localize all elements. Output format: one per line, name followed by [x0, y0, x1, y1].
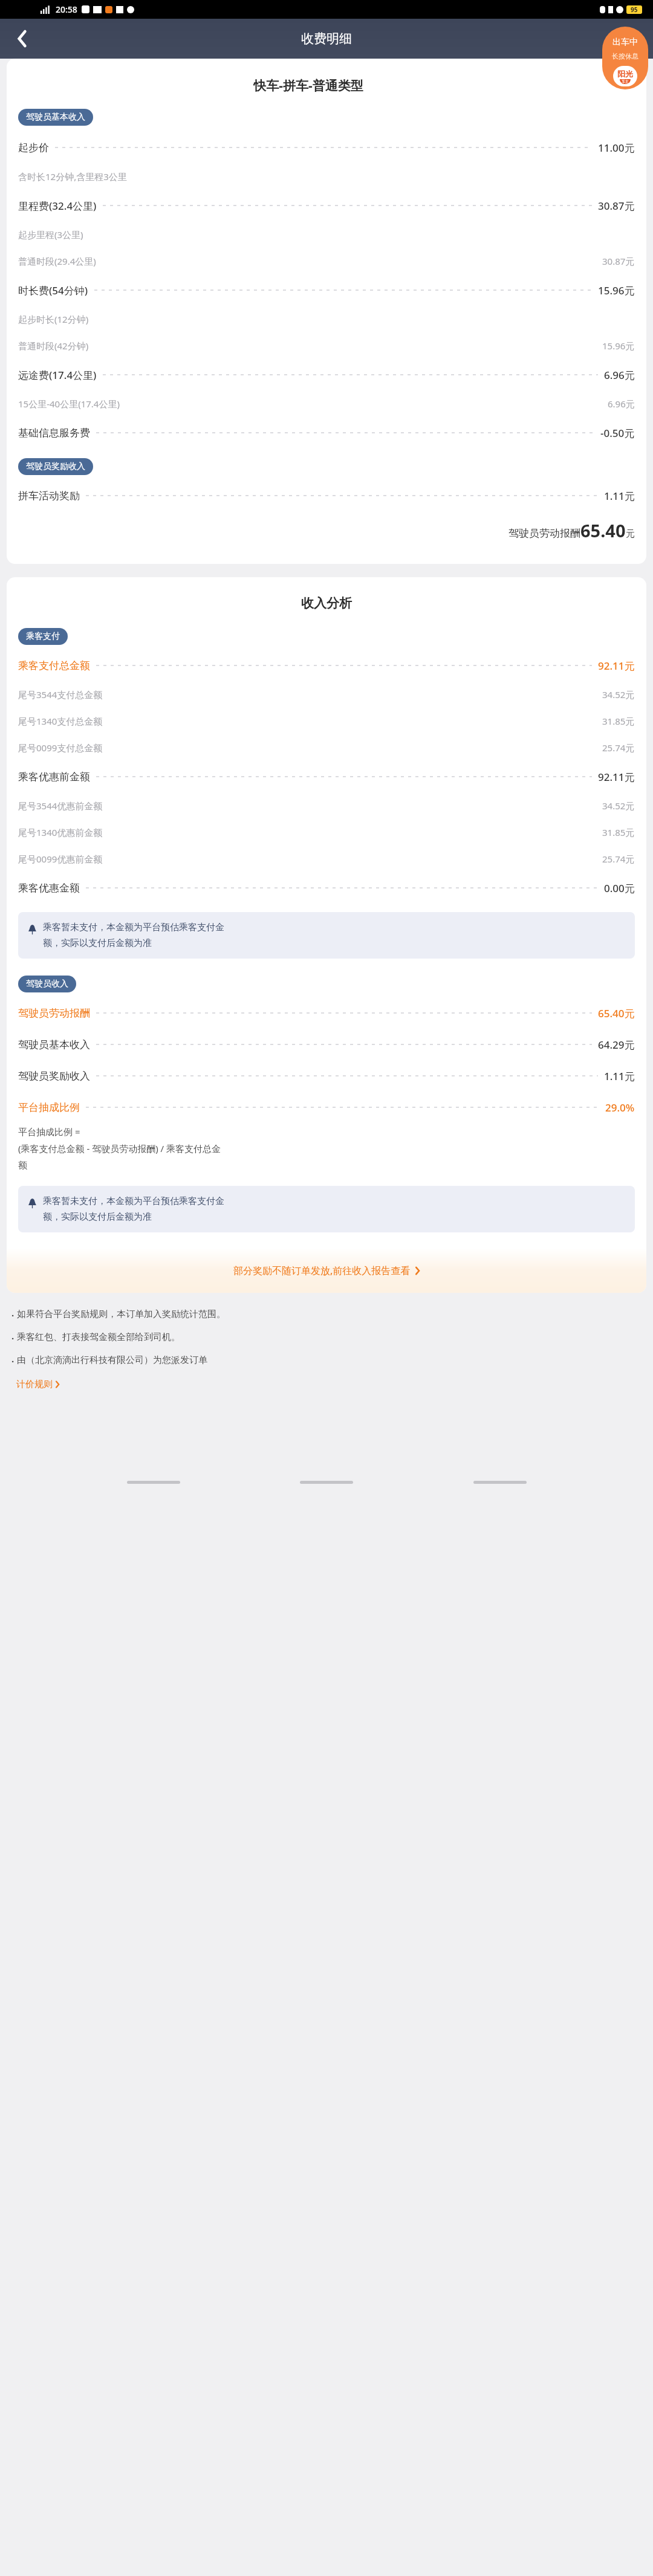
- staticText: 收费明细: [301, 31, 352, 47]
- button[interactable]: 驾驶员奖励收入: [18, 458, 93, 475]
- staticText: 25.74元: [602, 742, 635, 754]
- staticText: 0.00元: [604, 881, 635, 895]
- staticText: 由（北京滴滴出行科技有限公司）为您派发订单: [17, 1354, 207, 1366]
- staticText: 快车-拼车-普通类型: [18, 77, 599, 94]
- staticText: 31.85元: [602, 715, 635, 727]
- staticText: ·: [11, 1309, 15, 1321]
- staticText: 如果符合平台奖励规则，本订单加入奖励统计范围。: [17, 1309, 226, 1320]
- staticText: 30.87元: [598, 199, 635, 213]
- staticText: 普通时段(29.4公里): [18, 255, 96, 267]
- staticText: 15公里-40公里(17.4公里): [18, 398, 120, 410]
- staticText: 乘客支付: [26, 631, 60, 642]
- staticText: 出车中: [612, 37, 638, 48]
- staticText: 收入分析: [18, 595, 635, 611]
- staticText: 30.87元: [602, 255, 635, 267]
- staticText: 65.40元: [598, 1006, 635, 1020]
- staticText: 尾号1340优惠前金额: [18, 826, 103, 838]
- staticText: 普通时段(42分钟): [18, 340, 89, 352]
- staticText: 92.11元: [598, 770, 635, 784]
- button[interactable]: 出车中: [602, 27, 648, 89]
- staticText: 乘客红包、打表接驾金额全部给到司机。: [17, 1332, 180, 1343]
- staticText: 尾号1340支付总金额: [18, 715, 103, 727]
- staticText: 起步里程(3公里): [18, 228, 83, 241]
- staticText: 计价规则: [16, 1379, 53, 1390]
- button[interactable]: 计价规则: [16, 1379, 60, 1390]
- staticText: 车主: [622, 79, 629, 84]
- staticText: 尾号0099优惠前金额: [18, 853, 103, 865]
- button[interactable]: 乘客支付: [18, 628, 68, 645]
- staticText: 部分奖励不随订单发放,前往收入报告查看: [233, 1264, 411, 1277]
- staticText: 25.74元: [602, 853, 635, 865]
- staticText: 尾号0099支付总金额: [18, 742, 103, 754]
- staticText: 驾驶员基本收入: [18, 1038, 90, 1051]
- staticText: 31.85元: [602, 826, 635, 838]
- staticText: 起步价: [18, 141, 49, 154]
- staticText: 95: [631, 5, 638, 14]
- staticText: 34.52元: [602, 800, 635, 812]
- staticText: 驾驶员奖励收入: [18, 1070, 90, 1083]
- staticText: 时长费(54分钟): [18, 283, 88, 297]
- staticText: 1.11元: [604, 1069, 635, 1083]
- staticText: 1.11元: [604, 489, 635, 503]
- staticText: 含时长12分钟,含里程3公里: [18, 170, 127, 183]
- staticText: 6.96元: [604, 368, 635, 382]
- staticText: 阳光: [617, 69, 633, 79]
- staticText: 平台抽成比例: [18, 1101, 80, 1114]
- staticText: 驾驶员劳动报酬: [18, 1007, 90, 1020]
- staticText: 拼车活动奖励: [18, 490, 80, 502]
- staticText: 20:58: [56, 4, 77, 15]
- staticText: 里程费(32.4公里): [18, 199, 97, 213]
- staticText: 驾驶员收入: [26, 979, 68, 989]
- staticText: 驾驶员基本收入: [26, 112, 85, 123]
- staticText: ·: [11, 1355, 15, 1367]
- staticText: 乘客暂未支付，本金额为平台预估乘客支付金 额，实际以支付后金额为准: [43, 922, 224, 949]
- staticText: 34.52元: [602, 688, 635, 701]
- staticText: ·: [11, 1332, 15, 1344]
- staticText: 尾号3544优惠前金额: [18, 800, 103, 812]
- staticText: 元: [626, 528, 635, 540]
- staticText: 15.96元: [598, 283, 635, 297]
- staticText: 64.29元: [598, 1038, 635, 1052]
- staticText: 乘客暂未支付，本金额为平台预估乘客支付金 额，实际以支付后金额为准: [43, 1196, 224, 1223]
- staticText: 远途费(17.4公里): [18, 368, 97, 382]
- staticText: 65.40: [580, 519, 626, 542]
- staticText: 长按休息: [612, 52, 638, 60]
- staticText: 92.11元: [598, 659, 635, 673]
- staticText: 尾号3544支付总金额: [18, 688, 103, 701]
- staticText: 乘客优惠金额: [18, 882, 80, 895]
- staticText: 29.0%: [605, 1101, 635, 1115]
- staticText: 15.96元: [602, 340, 635, 352]
- staticText: 乘客优惠前金额: [18, 771, 90, 783]
- button[interactable]: 驾驶员收入: [18, 976, 76, 992]
- staticText: 乘客支付总金额: [18, 659, 90, 672]
- staticText: 11.00元: [598, 141, 635, 155]
- staticText: 基础信息服务费: [18, 427, 90, 439]
- staticText: 起步时长(12分钟): [18, 313, 89, 325]
- staticText: 驾驶员奖励收入: [26, 461, 85, 472]
- staticText: 平台抽成比例 = (乘客支付总金额 - 驾驶员劳动报酬) / 乘客支付总金 额: [18, 1125, 221, 1171]
- staticText: -0.50元: [600, 426, 635, 440]
- button[interactable]: Back: [7, 24, 36, 53]
- staticText: 驾驶员劳动报酬: [508, 527, 580, 540]
- staticText: 6.96元: [608, 398, 635, 410]
- button[interactable]: 驾驶员基本收入: [18, 109, 93, 126]
- button[interactable]: 部分奖励不随订单发放,前往收入报告查看: [7, 1248, 646, 1293]
